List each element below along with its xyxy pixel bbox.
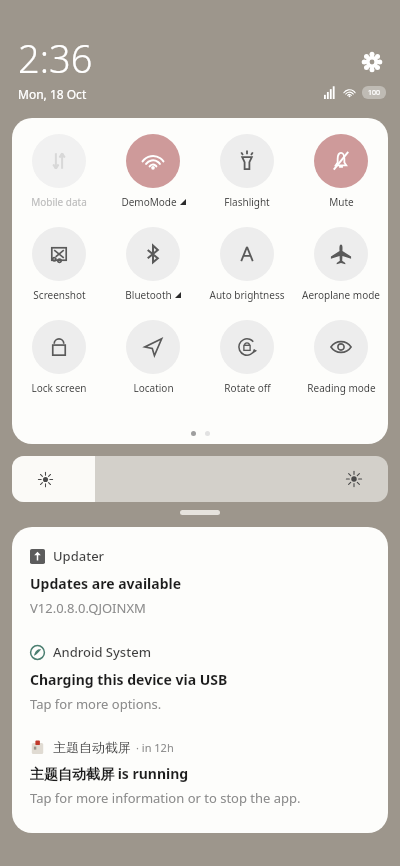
button[interactable]: Bluetooth (106, 225, 200, 304)
button[interactable]: Lock screen (12, 318, 106, 397)
staticText: Mute (329, 195, 354, 209)
staticText: Aeroplane mode (302, 288, 380, 302)
staticText: Location (133, 381, 174, 395)
button[interactable]: Location (106, 318, 200, 397)
staticText: Updater (53, 547, 105, 565)
staticText: Android System (53, 643, 151, 661)
staticText: Mobile data (31, 195, 87, 209)
staticText: Updates are available (30, 574, 182, 593)
staticText: Tap for more options. (30, 695, 162, 713)
button[interactable]: Rotate off (200, 318, 294, 397)
staticText: Flashlight (224, 195, 270, 209)
staticText: 主题自动截屏 is running (30, 764, 189, 783)
button[interactable]: 主题自动截屏 (30, 739, 370, 807)
staticText: · in 12h (136, 740, 174, 755)
button[interactable]: Brightness (12, 456, 388, 502)
staticText: DemoMode (121, 195, 177, 209)
button[interactable]: DemoMode (106, 132, 200, 211)
staticText: Rotate off (224, 381, 271, 395)
staticText: Bluetooth (125, 288, 172, 302)
staticText: 主题自动截屏 (53, 739, 131, 755)
staticText: Charging this device via USB (30, 670, 228, 689)
button[interactable]: Updater (30, 547, 370, 617)
staticText: Tap for more information or to stop the … (30, 789, 301, 807)
staticText: Lock screen (31, 381, 87, 395)
staticText: Auto brightness (209, 288, 285, 302)
button[interactable]: Mute (294, 132, 388, 211)
button[interactable]: Screenshot (12, 225, 106, 304)
staticText: V12.0.8.0.QJOINXM (30, 599, 146, 617)
button[interactable]: Reading mode (294, 318, 388, 397)
button[interactable]: Aeroplane mode (294, 225, 388, 304)
staticText: 100 (368, 88, 381, 98)
button[interactable]: Android System (30, 643, 370, 713)
staticText: Reading mode (307, 381, 376, 395)
button[interactable]: Settings (358, 48, 386, 76)
staticText: Screenshot (33, 288, 86, 302)
staticText: Mon, 18 Oct (18, 86, 87, 102)
button[interactable]: Mobile data (12, 132, 106, 211)
staticText: 2:36 (18, 32, 93, 84)
button[interactable]: Flashlight (200, 132, 294, 211)
button[interactable]: Auto brightness (200, 225, 294, 304)
